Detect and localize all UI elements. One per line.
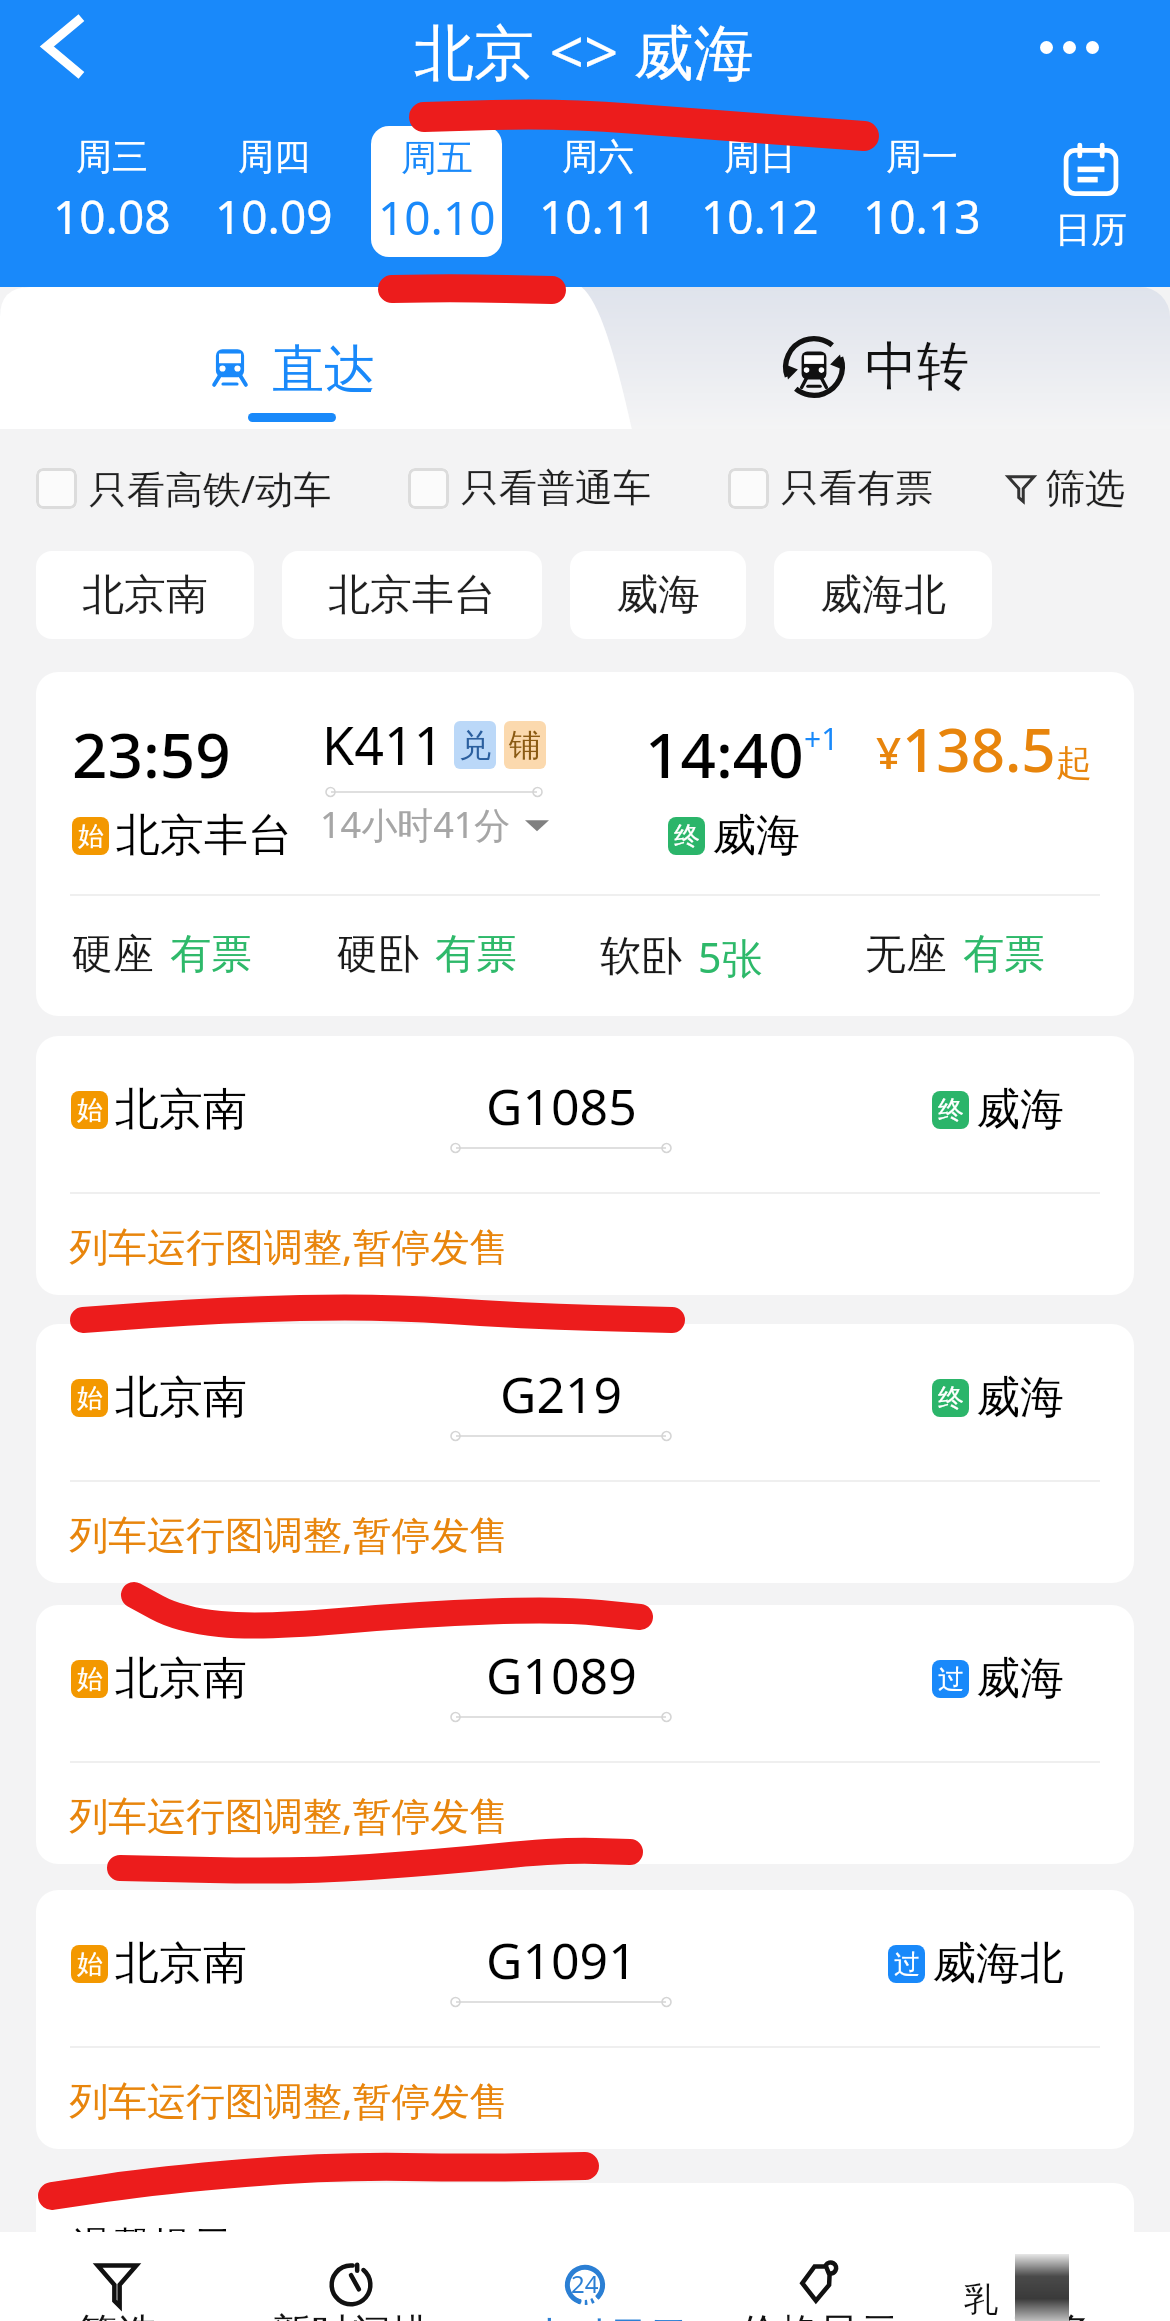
staticText: 24小时显示 — [482, 2308, 688, 2321]
staticText: 无座 — [865, 929, 947, 981]
staticText: 始 — [77, 1948, 103, 1981]
staticText: 列车运行图调整,暂停发售 — [69, 1788, 509, 1841]
staticText: 价格显示 — [739, 2308, 899, 2321]
staticText: 终 — [938, 1382, 964, 1415]
staticText: 10.11 — [539, 185, 657, 248]
other: 新时间排 — [329, 2262, 373, 2306]
button[interactable]: 始 — [36, 1036, 1134, 1295]
button[interactable]: Back — [0, 0, 124, 92]
staticText: K411 — [322, 709, 444, 780]
staticText: G1091 — [486, 1926, 637, 1994]
staticText: 始 — [78, 820, 104, 853]
button[interactable]: 周五 — [371, 126, 502, 257]
staticText: 温馨提示: — [72, 2217, 243, 2263]
staticText: 14:40 — [645, 712, 804, 796]
other: 筛选 — [95, 2262, 139, 2306]
button[interactable]: 只看有票 — [728, 464, 933, 512]
staticText: 直达 — [272, 337, 376, 403]
staticText: 周三 — [76, 134, 148, 179]
button[interactable]: 只看普通车 — [408, 464, 651, 512]
staticText: 北京南 — [82, 569, 208, 622]
staticText: 始 — [77, 1382, 103, 1415]
other: 价格显示 — [797, 2262, 841, 2306]
button[interactable]: 更多 — [936, 2232, 1170, 2321]
staticText: 只看高铁/动车 — [89, 462, 332, 514]
staticText: 更多 — [1013, 2308, 1093, 2321]
staticText: 威海北 — [932, 1936, 1064, 1991]
staticText: 北京 <> 威海 — [414, 10, 754, 92]
button[interactable]: 只看高铁/动车 — [36, 462, 332, 514]
button[interactable]: 威海 — [570, 551, 746, 639]
button[interactable]: 中转 — [581, 287, 1170, 429]
staticText: 威海 — [616, 569, 700, 622]
staticText: 过 — [894, 1948, 920, 1981]
staticText: 威海 — [976, 1370, 1064, 1425]
staticText: 列车运行图调整,暂停发售 — [69, 2073, 509, 2126]
staticText: 软卧 — [600, 931, 682, 983]
staticText: 乳 — [964, 2278, 998, 2321]
button[interactable]: 周日 — [701, 134, 819, 248]
staticText: 周日 — [724, 134, 796, 179]
staticText: 筛选 — [1045, 463, 1125, 513]
staticText: 中转 — [865, 334, 969, 400]
staticText: 新时间排 — [271, 2308, 431, 2321]
staticText: 列车运行图调整,暂停发售 — [69, 1507, 509, 1560]
staticText: 过 — [938, 1663, 964, 1696]
staticText: 5张 — [698, 929, 763, 985]
button[interactable]: 北京南 — [36, 551, 254, 639]
staticText: 威海 — [976, 1651, 1064, 1706]
button[interactable]: 周四 — [215, 134, 333, 248]
staticText: 10.13 — [863, 185, 981, 248]
staticText: 周四 — [238, 134, 310, 179]
staticText: 铺 — [509, 725, 541, 765]
staticText: 10.10 — [378, 186, 496, 249]
button[interactable]: 周六 — [539, 134, 657, 248]
button[interactable]: 价格显示 — [702, 2232, 936, 2321]
staticText: 硬座 — [72, 929, 154, 981]
button[interactable]: 24 — [468, 2232, 702, 2321]
button[interactable]: 威海北 — [774, 551, 992, 639]
staticText: 威海北 — [820, 569, 946, 622]
button[interactable]: 始 — [36, 1605, 1134, 1864]
button[interactable]: More options — [1025, 0, 1170, 94]
staticText: 起 — [1056, 740, 1092, 785]
button[interactable]: 始 — [36, 1890, 1134, 2149]
staticText: G219 — [500, 1360, 623, 1428]
button[interactable]: Calendar — [1031, 144, 1151, 252]
button[interactable]: 23:59 — [36, 672, 1134, 1016]
staticText: 北京南 — [115, 1370, 247, 1425]
staticText: 14小时41分 — [320, 800, 511, 849]
staticText: 威海 — [712, 808, 800, 863]
button[interactable]: 周一 — [863, 134, 981, 248]
staticText: 只看有票 — [781, 464, 933, 512]
button[interactable]: 周三 — [53, 134, 171, 248]
staticText: 威海 — [976, 1082, 1064, 1137]
staticText: 始 — [77, 1094, 103, 1127]
staticText: +1 — [804, 718, 839, 759]
button[interactable]: 北京丰台 — [282, 551, 542, 639]
button[interactable]: 始 — [36, 1324, 1134, 1583]
staticText: 10.09 — [215, 185, 333, 248]
staticText: 只看普通车 — [461, 464, 651, 512]
staticText: 日历 — [1055, 207, 1127, 252]
staticText: 24 — [571, 2267, 599, 2300]
staticText: 138.5 — [902, 708, 1056, 790]
staticText: 有票 — [170, 929, 252, 981]
staticText: 终 — [938, 1094, 964, 1127]
staticText: 周一 — [886, 134, 958, 179]
staticText: 北京丰台 — [116, 808, 292, 863]
button[interactable]: 筛选 — [0, 2232, 234, 2321]
staticText: 有票 — [963, 929, 1045, 981]
staticText: 10.12 — [701, 185, 819, 248]
staticText: 终 — [674, 820, 700, 853]
button[interactable]: 直达 — [0, 287, 585, 429]
staticText: 周六 — [562, 134, 634, 179]
staticText: 有票 — [435, 929, 517, 981]
button[interactable]: 新时间排 — [234, 2232, 468, 2321]
other: 24小时显示 — [563, 2262, 607, 2306]
button[interactable]: 筛选 — [1007, 463, 1125, 513]
staticText: 北京南 — [115, 1936, 247, 1991]
staticText: 北京南 — [115, 1651, 247, 1706]
staticText: G1085 — [486, 1072, 637, 1140]
staticText: 北京南 — [115, 1082, 247, 1137]
